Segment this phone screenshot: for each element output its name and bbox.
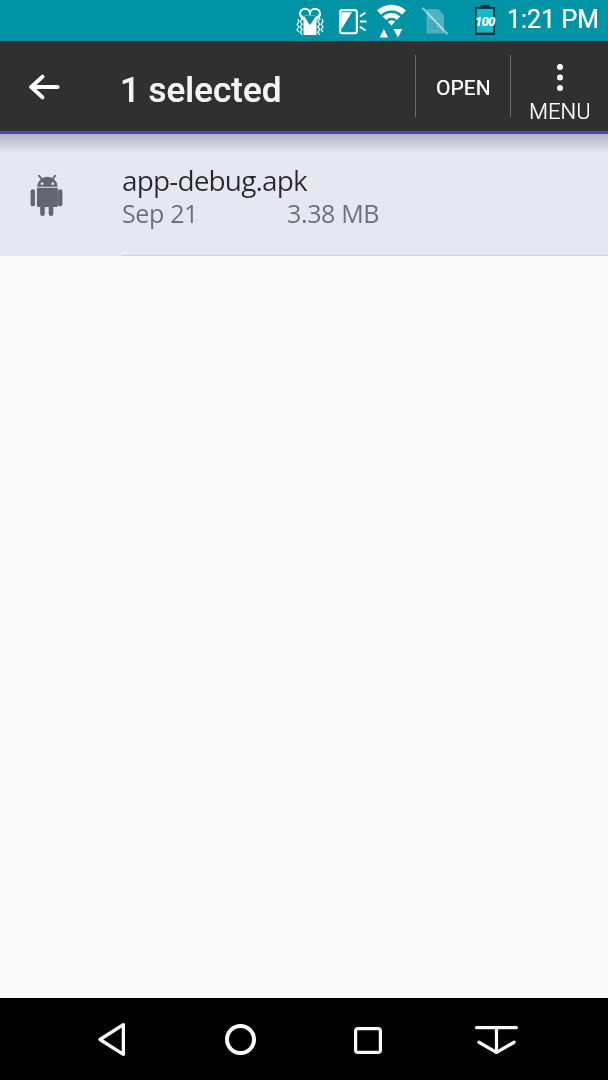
- staticText: 1:21 PM: [507, 5, 600, 34]
- button[interactable]: Home: [198, 998, 282, 1080]
- button[interactable]: Back: [69, 998, 153, 1080]
- button[interactable]: Back: [14, 41, 74, 131]
- button[interactable]: OPEN: [416, 41, 510, 131]
- staticText: MENU: [529, 99, 591, 125]
- button[interactable]: Recents: [326, 998, 410, 1080]
- button[interactable]: More options menu: [511, 41, 608, 131]
- staticText: 100: [475, 14, 495, 29]
- staticText: OPEN: [436, 76, 491, 101]
- staticText: Sep 21: [122, 196, 199, 230]
- button[interactable]: app-debug.apk: [0, 134, 608, 256]
- staticText: 3.38 MB: [287, 196, 380, 230]
- staticText: 1 selected: [120, 70, 282, 111]
- staticText: app-debug.apk: [122, 161, 307, 199]
- button[interactable]: Hide keyboard: [454, 998, 538, 1080]
